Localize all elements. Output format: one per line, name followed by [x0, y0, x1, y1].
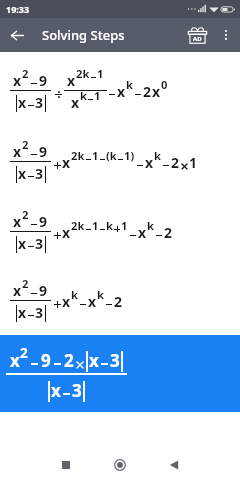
staticText: 2k: [76, 66, 90, 81]
staticText: 9: [39, 212, 48, 230]
staticText: Solving Steps: [42, 26, 125, 44]
staticText: x: [18, 164, 27, 182]
staticText: 3: [72, 379, 82, 401]
staticText: 2: [22, 66, 29, 81]
button[interactable]: Home: [106, 451, 134, 479]
staticText: x: [13, 142, 22, 160]
button[interactable]: x: [10, 280, 240, 320]
staticText: x: [62, 292, 71, 310]
staticText: 2: [164, 223, 173, 241]
staticText: x: [152, 82, 161, 100]
staticText: x: [18, 303, 27, 321]
staticText: x: [67, 71, 76, 89]
staticText: k: [154, 148, 161, 163]
staticText: x: [13, 71, 22, 89]
staticText: 9: [41, 349, 51, 371]
staticText: k: [80, 88, 87, 103]
staticText: x: [13, 212, 22, 230]
staticText: x: [145, 153, 154, 171]
staticText: x: [18, 234, 27, 252]
button[interactable]: More options: [214, 23, 238, 47]
staticText: x: [13, 281, 22, 299]
staticText: x: [10, 349, 20, 371]
staticText: 2: [22, 137, 29, 152]
staticText: 3: [110, 349, 120, 371]
staticText: 9: [39, 281, 48, 299]
staticText: k: [71, 287, 78, 302]
staticText: 9: [39, 71, 48, 89]
staticText: k: [106, 218, 113, 233]
staticText: 1: [92, 148, 99, 163]
staticText: 2: [143, 82, 152, 100]
staticText: 2: [22, 276, 29, 291]
staticText: 1: [92, 218, 99, 233]
button[interactable]: Back: [0, 18, 34, 52]
staticText: 1: [189, 153, 198, 171]
staticText: 3: [35, 93, 44, 111]
staticText: x: [18, 93, 27, 111]
button[interactable]: Recent apps: [52, 451, 80, 479]
staticText: 19:33: [6, 3, 30, 15]
staticText: x: [88, 292, 97, 310]
staticText: k: [126, 77, 133, 92]
staticText: 1: [97, 66, 104, 81]
staticText: x: [89, 349, 99, 371]
staticText: 1): [124, 148, 135, 163]
staticText: x: [51, 379, 61, 401]
staticText: 2: [22, 207, 29, 222]
staticText: 3: [35, 234, 44, 252]
button[interactable]: Back: [160, 451, 188, 479]
staticText: (k: [106, 148, 117, 163]
staticText: k: [97, 287, 104, 302]
staticText: x: [138, 223, 147, 241]
staticText: 2k: [71, 148, 85, 163]
button[interactable]: Watch ad: [180, 18, 214, 52]
button[interactable]: x: [10, 141, 240, 181]
staticText: x: [71, 93, 80, 111]
staticText: 2k: [71, 218, 85, 233]
staticText: x: [62, 153, 71, 171]
staticText: k: [147, 218, 154, 233]
staticText: 2: [171, 153, 180, 171]
staticText: 3: [35, 164, 44, 182]
button[interactable]: x: [10, 70, 240, 110]
staticText: 2: [64, 349, 74, 371]
staticText: 0: [161, 77, 168, 92]
staticText: 2: [114, 292, 123, 310]
button[interactable]: x: [10, 211, 240, 251]
staticText: AD: [193, 35, 202, 43]
staticText: 1: [94, 88, 101, 103]
staticText: x: [62, 223, 71, 241]
staticText: 3: [35, 303, 44, 321]
staticText: 2: [20, 343, 28, 362]
staticText: 1: [121, 218, 128, 233]
staticText: 9: [39, 142, 48, 160]
staticText: x: [117, 82, 126, 100]
button[interactable]: x: [0, 335, 240, 412]
